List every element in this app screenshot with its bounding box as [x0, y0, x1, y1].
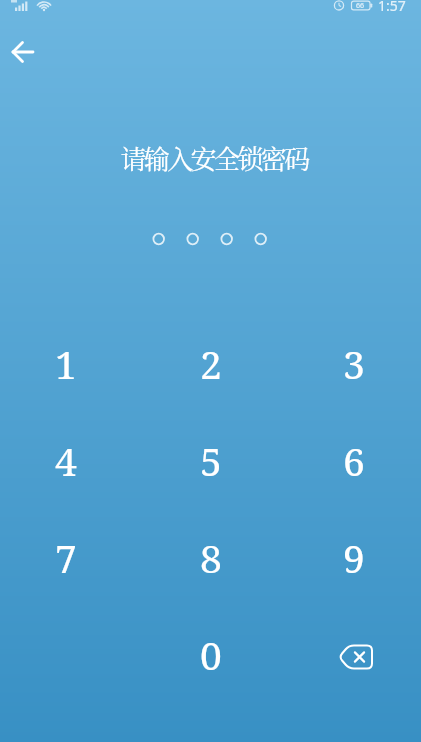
- button[interactable]: 8: [156, 515, 266, 599]
- staticText: 6: [343, 434, 365, 487]
- button[interactable]: 1: [11, 321, 121, 405]
- button[interactable]: [4, 34, 42, 70]
- button[interactable]: 9: [299, 515, 409, 599]
- staticText: 5: [200, 434, 222, 487]
- staticText: 3: [343, 337, 365, 390]
- button[interactable]: 5: [156, 418, 266, 502]
- button[interactable]: [299, 615, 409, 699]
- staticText: 请输入安全锁密码: [120, 139, 308, 176]
- staticText: 1:57: [378, 0, 406, 12]
- staticText: 7: [55, 531, 77, 584]
- staticText: 1: [55, 337, 77, 390]
- button[interactable]: 4: [11, 418, 121, 502]
- button[interactable]: 7: [11, 515, 121, 599]
- staticText: 8: [200, 531, 222, 584]
- staticText: 9: [343, 531, 365, 584]
- button[interactable]: 3: [299, 321, 409, 405]
- staticText: 4: [55, 434, 77, 487]
- button[interactable]: 6: [299, 418, 409, 502]
- staticText: 66: [356, 1, 365, 11]
- button[interactable]: 0: [156, 612, 266, 696]
- staticText: 0: [200, 628, 222, 681]
- staticText: 2: [200, 337, 222, 390]
- button[interactable]: 2: [156, 321, 266, 405]
